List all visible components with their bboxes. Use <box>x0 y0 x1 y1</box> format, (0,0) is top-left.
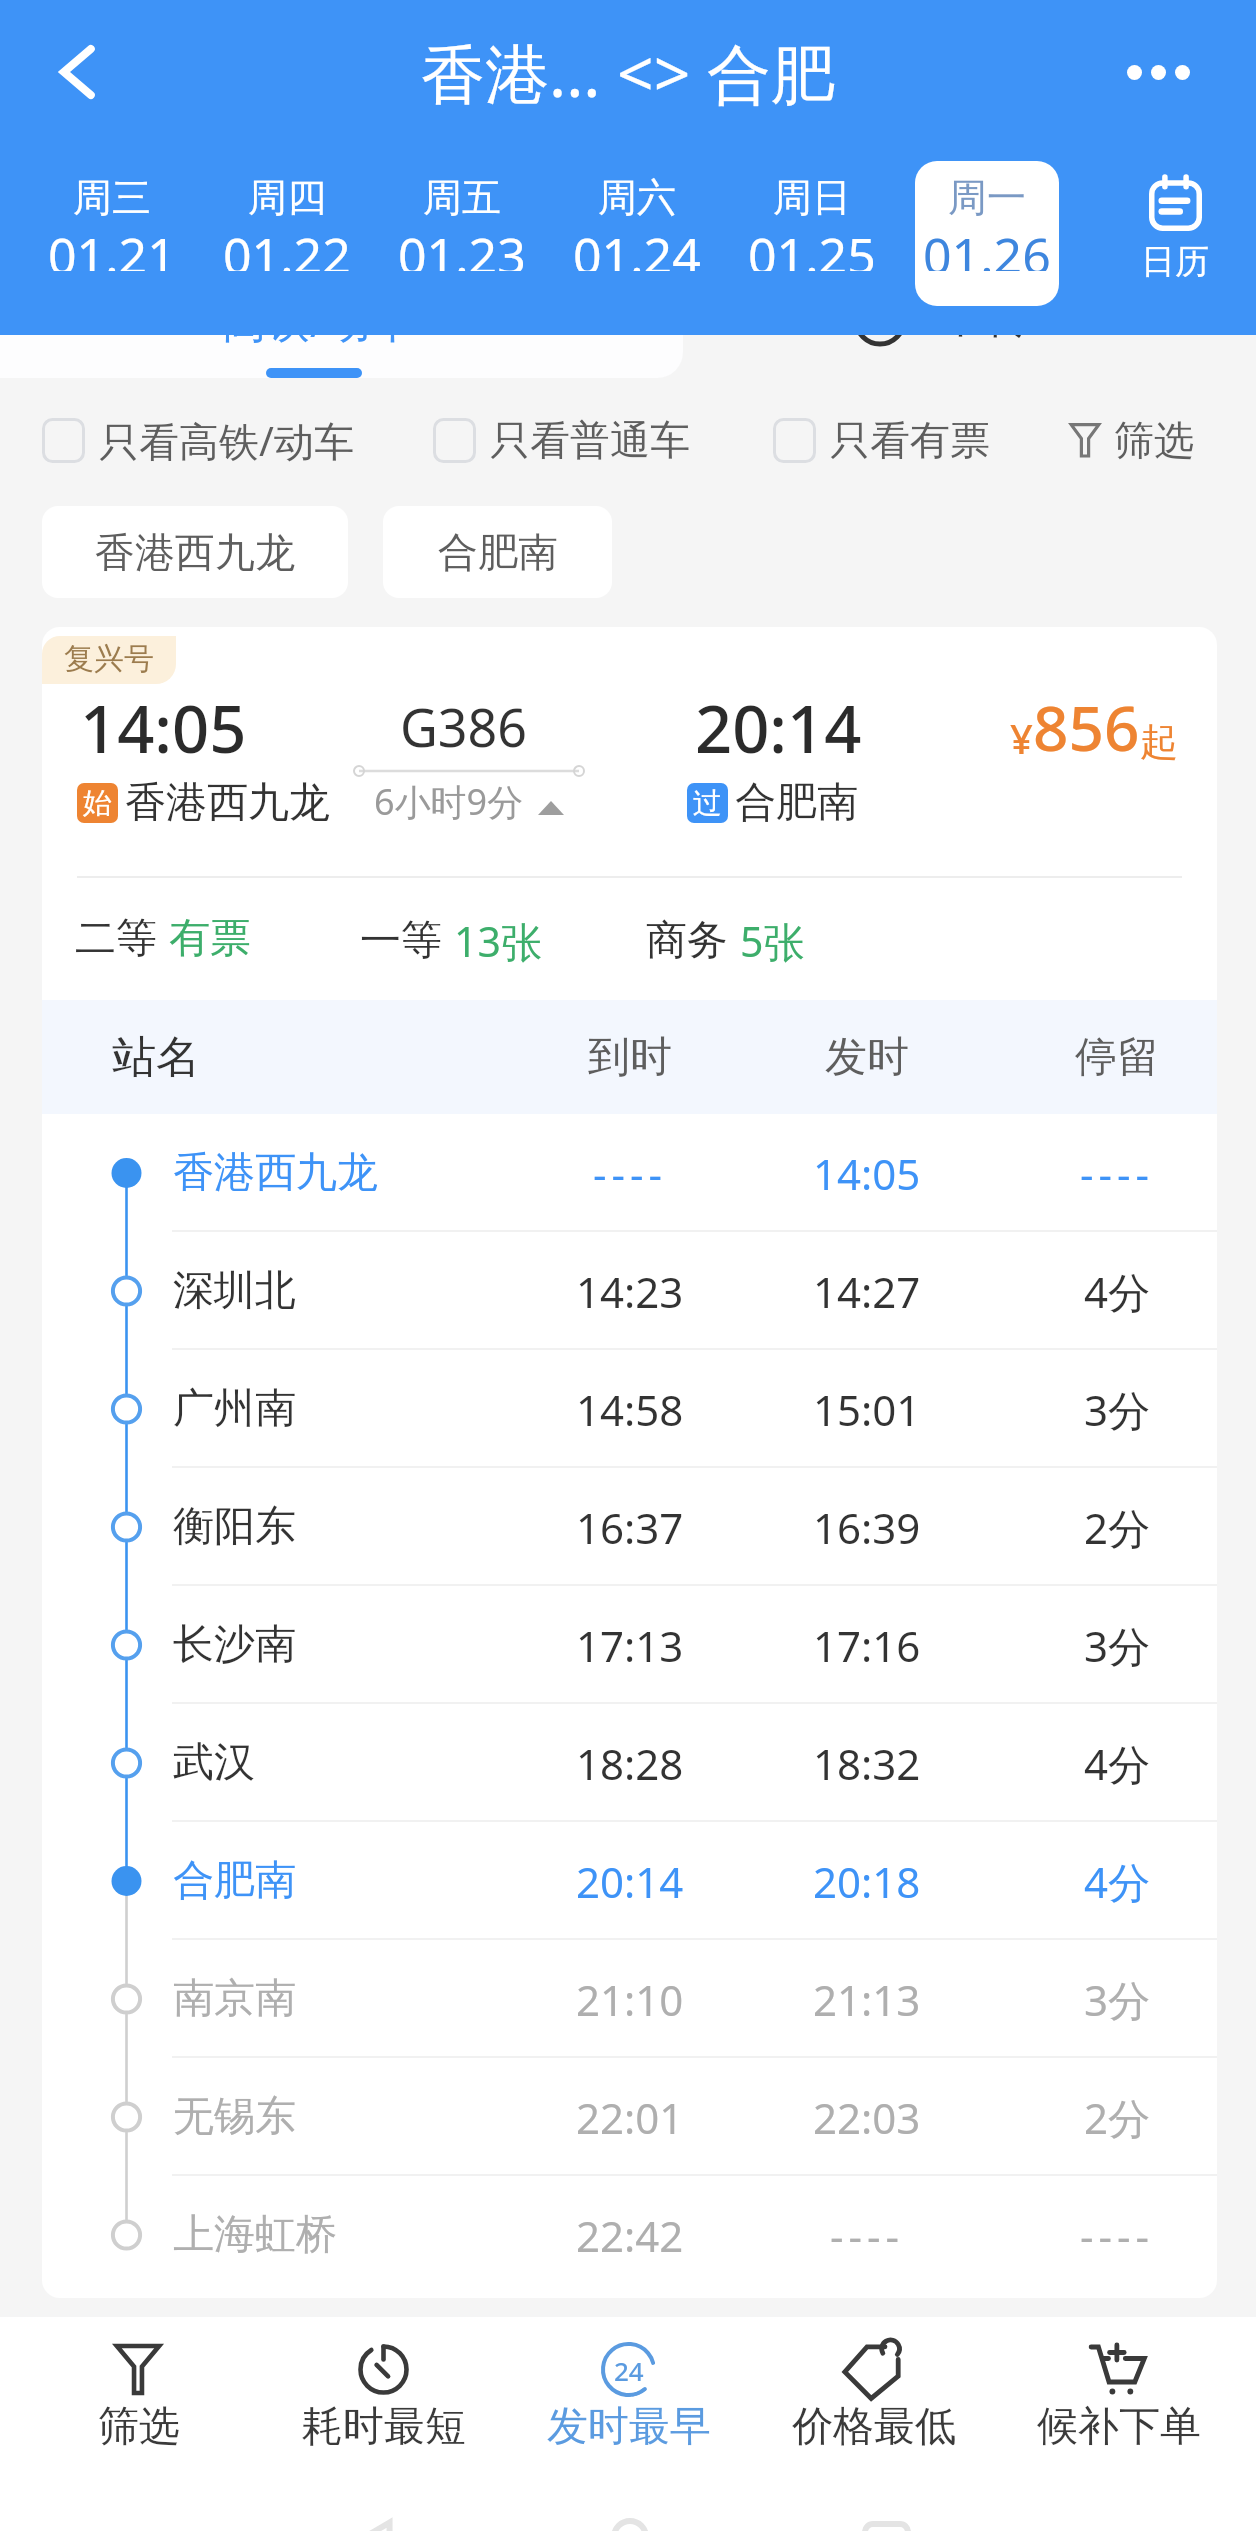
button[interactable]: 周一 <box>915 161 1059 306</box>
button[interactable]: 耗时最短 <box>261 2317 506 2531</box>
button[interactable]: 只看高铁/动车 <box>42 399 354 481</box>
button[interactable]: 无锡东 <box>42 2058 1217 2176</box>
button[interactable]: 香港西九龙 <box>42 506 348 598</box>
staticText: 香港西九龙 <box>125 777 330 829</box>
button[interactable]: 只看有票 <box>773 399 990 481</box>
staticText: 无锡东 <box>173 2091 296 2143</box>
staticText: 有票 <box>169 913 251 965</box>
staticText: 3分 <box>1084 1381 1151 1438</box>
staticText: 只看普通车 <box>490 415 690 465</box>
button[interactable]: 香港西九龙 <box>42 1114 1217 1232</box>
staticText: 到时 <box>588 1031 672 1084</box>
button[interactable]: Back <box>22 16 134 128</box>
staticText: 合肥南 <box>173 1855 296 1907</box>
staticText: 4分 <box>1084 1853 1151 1910</box>
staticText: 站名 <box>112 1030 200 1085</box>
staticText: 香港西九龙 <box>173 1147 378 1199</box>
staticText: 香港... <> 合肥 <box>421 29 835 116</box>
button[interactable]: 广州南 <box>42 1350 1217 1468</box>
staticText: ---- <box>593 1145 668 1202</box>
button[interactable]: 武汉 <box>42 1704 1217 1822</box>
staticText: 周四 <box>248 173 326 218</box>
button[interactable]: Calendar <box>1097 161 1253 306</box>
staticText: 14:23 <box>576 1263 684 1320</box>
button[interactable]: 周五 <box>390 161 534 306</box>
staticText: 筛选 <box>1114 415 1194 465</box>
staticText: 16:39 <box>813 1499 921 1556</box>
staticText: ---- <box>1080 1145 1155 1202</box>
staticText: 合肥南 <box>735 777 858 829</box>
button[interactable]: 只看普通车 <box>433 399 690 481</box>
button[interactable]: 衡阳东 <box>42 1468 1217 1586</box>
staticText: 过 <box>693 785 722 822</box>
staticText: 起 <box>1140 718 1178 766</box>
staticText: 衡阳东 <box>173 1501 296 1553</box>
staticText: 2分 <box>1084 1499 1151 1556</box>
button[interactable]: 深圳北 <box>42 1232 1217 1350</box>
staticText: 5张 <box>740 913 805 969</box>
staticText: 13张 <box>454 913 542 969</box>
button[interactable]: 长沙南 <box>42 1586 1217 1704</box>
staticText: 2分 <box>1084 2089 1151 2146</box>
staticText: 周六 <box>598 173 676 218</box>
staticText: 20:14 <box>576 1853 684 1910</box>
staticText: 20:14 <box>695 684 862 773</box>
button[interactable]: 24 <box>506 2317 751 2531</box>
button[interactable]: 周六 <box>565 161 709 306</box>
button[interactable]: More options <box>1102 16 1214 128</box>
staticText: 周日 <box>773 173 851 218</box>
staticText: 4分 <box>1084 1263 1151 1320</box>
button[interactable]: 价格最低 <box>751 2317 996 2531</box>
button[interactable]: 筛选 <box>1070 401 1194 479</box>
staticText: 武汉 <box>173 1737 255 1789</box>
staticText: 合肥南 <box>438 527 558 577</box>
staticText: 17:13 <box>576 1617 684 1674</box>
staticText: ¥ <box>1010 711 1033 765</box>
staticText: 4分 <box>1084 1735 1151 1792</box>
staticText: 01.21 <box>48 221 176 271</box>
staticText: 15:01 <box>813 1381 921 1438</box>
staticText: 发时 <box>825 1031 909 1084</box>
staticText: 广州南 <box>173 1383 296 1435</box>
button[interactable]: 周四 <box>215 161 359 306</box>
button[interactable]: 候补下单 <box>996 2317 1241 2531</box>
staticText: 长沙南 <box>173 1619 296 1671</box>
staticText: 复兴号 <box>64 640 154 678</box>
staticText: 01.24 <box>573 221 701 271</box>
staticText: 商务 <box>646 915 728 967</box>
staticText: G386 <box>400 691 528 762</box>
staticText: 21:13 <box>813 1971 921 2028</box>
staticText: 一等 <box>360 915 442 967</box>
staticText: 3分 <box>1084 1617 1151 1674</box>
button[interactable]: 周日 <box>740 161 884 306</box>
staticText: 17:16 <box>813 1617 921 1674</box>
staticText: 856 <box>1033 685 1140 769</box>
staticText: 24 <box>614 2353 644 2388</box>
staticText: 14:05 <box>80 684 247 773</box>
button[interactable]: 复兴号 <box>42 627 1217 2298</box>
staticText: 上海虹桥 <box>173 2209 337 2261</box>
staticText: 14:05 <box>813 1145 921 1202</box>
staticText: 22:03 <box>813 2089 921 2146</box>
staticText: 18:28 <box>576 1735 684 1792</box>
staticText: 停留 <box>1075 1031 1159 1084</box>
button[interactable]: 南京南 <box>42 1940 1217 2058</box>
staticText: 只看有票 <box>830 415 990 465</box>
button[interactable]: 周三 <box>40 161 184 306</box>
staticText: 22:42 <box>576 2207 684 2264</box>
button[interactable]: 合肥南 <box>383 506 612 598</box>
staticText: 筛选 <box>98 2401 180 2451</box>
button[interactable]: 上海虹桥 <box>42 2176 1217 2294</box>
staticText: ---- <box>830 2207 905 2264</box>
button[interactable]: 合肥南 <box>42 1822 1217 1940</box>
staticText: 01.23 <box>398 221 526 271</box>
staticText: ---- <box>1080 2207 1155 2264</box>
staticText: 21:10 <box>576 1971 684 2028</box>
staticText: 01.25 <box>748 221 876 271</box>
staticText: 候补下单 <box>1037 2401 1201 2451</box>
staticText: 6小时9分 <box>374 777 524 826</box>
staticText: 香港西九龙 <box>95 527 295 577</box>
button[interactable]: 筛选 <box>16 2317 261 2531</box>
staticText: 3分 <box>1084 1971 1151 2028</box>
staticText: 二等 <box>75 913 157 965</box>
